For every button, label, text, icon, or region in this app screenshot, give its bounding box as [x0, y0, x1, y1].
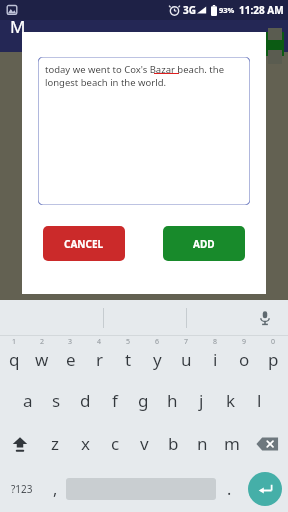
- staticText: l: [257, 389, 262, 412]
- staticText: ,: [53, 478, 58, 500]
- staticText: 9: [242, 337, 247, 347]
- staticText: s: [52, 389, 61, 412]
- button[interactable]: 0: [259, 336, 288, 379]
- staticText: u: [181, 348, 192, 371]
- staticText: today we went to Cox's Bazar beach. the: [45, 63, 224, 76]
- button[interactable]: Shift: [0, 422, 40, 465]
- staticText: x: [81, 432, 90, 455]
- button[interactable]: 7: [172, 336, 201, 379]
- button[interactable]: s: [42, 379, 71, 422]
- staticText: 3: [68, 337, 73, 347]
- staticText: .: [227, 478, 232, 500]
- staticText: 7: [184, 337, 189, 347]
- staticText: 3G: [183, 3, 196, 17]
- staticText: 0: [271, 337, 276, 347]
- button[interactable]: l: [245, 379, 274, 422]
- staticText: 8: [213, 337, 218, 347]
- button[interactable]: a: [14, 379, 42, 422]
- staticText: z: [51, 432, 59, 455]
- staticText: f: [112, 389, 118, 412]
- staticText: p: [268, 348, 279, 371]
- button[interactable]: ?123: [0, 465, 44, 512]
- staticText: k: [226, 389, 236, 412]
- button[interactable]: d: [71, 379, 100, 422]
- staticText: h: [167, 389, 178, 412]
- staticText: 1: [12, 337, 17, 347]
- staticText: M: [10, 15, 26, 38]
- button[interactable]: g: [129, 379, 158, 422]
- button[interactable]: ADD: [163, 226, 245, 261]
- staticText: i: [213, 348, 218, 371]
- staticText: q: [9, 348, 20, 371]
- button[interactable]: .: [216, 465, 242, 512]
- staticText: 2: [40, 337, 45, 347]
- staticText: j: [199, 389, 204, 412]
- button[interactable]: n: [188, 422, 217, 465]
- button[interactable]: b: [159, 422, 188, 465]
- button[interactable]: h: [158, 379, 187, 422]
- staticText: CANCEL: [64, 237, 104, 251]
- staticText: m: [224, 432, 240, 455]
- button[interactable]: 8: [201, 336, 230, 379]
- staticText: w: [35, 348, 49, 371]
- button[interactable]: CANCEL: [43, 226, 125, 261]
- staticText: 11:28 AM: [239, 3, 284, 17]
- button[interactable]: x: [70, 422, 100, 465]
- staticText: d: [80, 389, 91, 412]
- button[interactable]: f: [100, 379, 129, 422]
- button[interactable]: v: [130, 422, 159, 465]
- staticText: o: [239, 348, 250, 371]
- staticText: 6: [155, 337, 160, 347]
- button[interactable]: 9: [230, 336, 259, 379]
- button[interactable]: 5: [114, 336, 143, 379]
- button[interactable]: 3: [56, 336, 85, 379]
- button[interactable]: 6: [143, 336, 172, 379]
- staticText: 93%: [219, 5, 235, 15]
- button[interactable]: Backspace: [246, 422, 288, 465]
- staticText: c: [111, 432, 120, 455]
- staticText: y: [153, 348, 162, 371]
- button[interactable]: Voice input: [252, 305, 278, 331]
- staticText: n: [197, 432, 208, 455]
- button[interactable]: z: [40, 422, 70, 465]
- staticText: a: [23, 389, 33, 412]
- staticText: r: [96, 348, 104, 371]
- staticText: b: [168, 432, 179, 455]
- button[interactable]: m: [217, 422, 246, 465]
- staticText: 5: [126, 337, 131, 347]
- button[interactable]: ,: [44, 465, 66, 512]
- staticText: longest beach in the world.: [45, 76, 167, 89]
- button[interactable]: c: [100, 422, 130, 465]
- staticText: t: [125, 348, 132, 371]
- staticText: v: [140, 432, 149, 455]
- staticText: g: [138, 389, 149, 412]
- staticText: 4: [97, 337, 102, 347]
- button[interactable]: k: [216, 379, 245, 422]
- button[interactable]: Enter: [248, 472, 282, 506]
- button[interactable]: 1: [0, 336, 28, 379]
- staticText: ?123: [11, 482, 33, 496]
- button[interactable]: 4: [85, 336, 114, 379]
- button[interactable]: 2: [28, 336, 56, 379]
- button[interactable]: j: [187, 379, 216, 422]
- staticText: ADD: [193, 237, 215, 251]
- staticText: e: [66, 348, 76, 371]
